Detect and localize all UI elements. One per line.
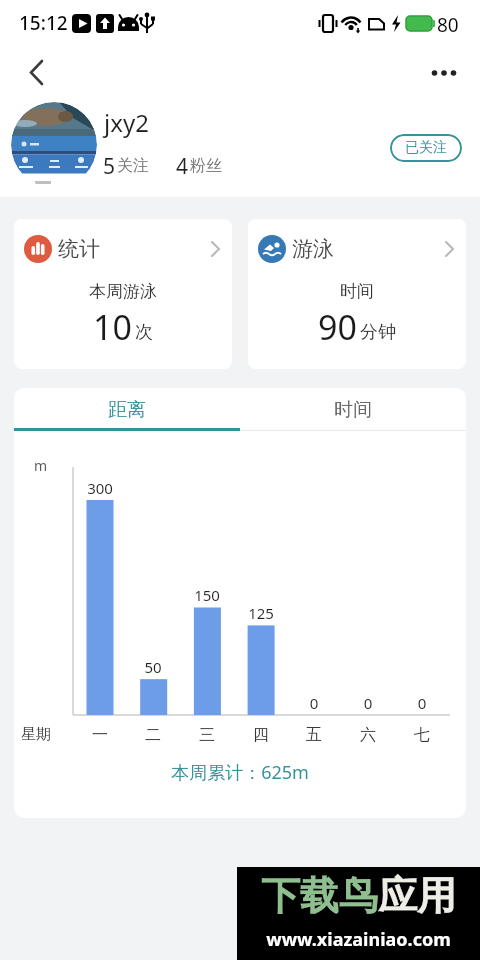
staticText: 七 [397,725,447,745]
button[interactable]: 已关注 [390,134,462,162]
staticText: 三 [182,725,232,745]
staticText: www.xiazainiao.com [237,927,480,952]
staticText: 0 [397,693,447,713]
staticText: 星期 [21,725,51,744]
staticText: 统计 [58,236,100,262]
staticText: 分钟 [360,321,396,344]
staticText: 一 [75,725,125,745]
staticText: 游泳 [292,236,334,262]
staticText: 0 [289,693,339,713]
staticText: 四 [236,725,286,745]
staticText: 次 [135,321,153,344]
button[interactable]: 距离 [14,388,240,431]
staticText: 125 [236,603,286,623]
staticText: 粉丝 [190,156,222,176]
staticText: 距离 [108,398,146,422]
button[interactable]: 统计 [14,219,232,369]
staticText: jxy2 [104,106,149,139]
staticText: 5 [103,152,116,181]
staticText: 4 [176,152,189,181]
staticText: 关注 [117,156,149,176]
staticText: m [34,456,48,475]
staticText: 本周累计：625m [14,760,466,785]
staticText: 15:12 [19,10,68,36]
staticText: 二 [128,725,178,745]
button[interactable] [424,55,464,91]
staticText: 时间 [248,281,466,302]
button[interactable]: 游泳 [248,219,466,369]
staticText: 本周游泳 [14,281,232,302]
staticText: 五 [289,725,339,745]
button[interactable]: 时间 [240,388,466,431]
staticText: 下载鸟应用 [237,871,480,920]
staticText: 150 [182,585,232,605]
button[interactable] [14,55,50,91]
staticText: 50 [128,657,178,677]
staticText: 300 [75,478,125,498]
staticText: 80 [437,12,459,38]
staticText: 时间 [334,398,372,422]
staticText: 六 [343,725,393,745]
staticText: 90 [318,304,357,350]
staticText: 10 [93,304,132,350]
staticText: 已关注 [405,139,447,157]
staticText: 0 [343,693,393,713]
